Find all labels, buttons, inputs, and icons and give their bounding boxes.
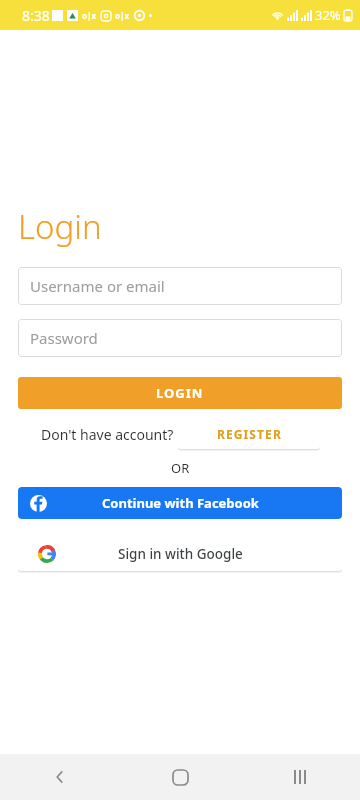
button[interactable]: Home [156,754,204,800]
staticText: Don't have account? [41,425,174,444]
staticText: OR [171,459,190,477]
staticText: Continue with Facebook [102,494,259,512]
staticText: o|x [82,10,97,21]
staticText: LOGIN [156,384,204,402]
button[interactable]: Facebook [18,487,342,519]
button[interactable]: Recent apps [276,754,324,800]
staticText: o|x [115,10,130,21]
staticText: 32% [315,6,341,24]
button[interactable]: Password [18,319,342,357]
button[interactable]: LOGIN [18,377,342,409]
staticText: Username or email [30,276,165,296]
other: Google [38,545,56,563]
staticText: Login [18,204,102,249]
button[interactable]: Back [36,754,84,800]
staticText: 8:38 [22,6,50,25]
button[interactable]: Username or email [18,267,342,305]
other: Facebook [30,495,47,512]
staticText: Password [30,328,98,348]
button[interactable]: Google [18,537,342,571]
staticText: REGISTER [217,426,282,442]
button[interactable]: REGISTER [178,419,320,449]
staticText: Sign in with Google [118,545,243,563]
